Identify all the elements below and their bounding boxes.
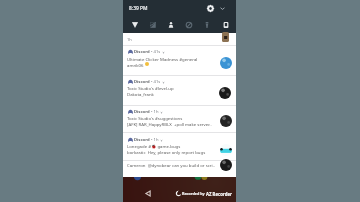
staticText: Discord xyxy=(134,109,150,115)
button[interactable]: Flashlight xyxy=(200,18,213,31)
button[interactable]: Discord xyxy=(123,133,236,160)
staticText: Cameron @dynobear can you build or scri.… xyxy=(127,162,215,168)
staticText: [AFK] RAR_HappyRBLX +poll make server.. xyxy=(127,121,213,127)
staticText: 1h xyxy=(127,37,132,42)
button[interactable]: Settings xyxy=(206,4,215,13)
staticText: Recorded by xyxy=(182,191,205,196)
staticText: • 1h xyxy=(151,109,159,115)
staticText: Discord xyxy=(134,137,150,143)
button[interactable]: Wi-Fi xyxy=(128,18,141,31)
button[interactable]: Expand quick settings xyxy=(218,4,227,13)
button[interactable]: Discord xyxy=(123,75,236,104)
staticText: Lonegade #🐞 game-bugs xyxy=(127,143,213,149)
button[interactable]: Cameron @dynobear can you build or scri.… xyxy=(123,160,236,177)
button[interactable]: 1h xyxy=(123,33,236,45)
staticText: Discord xyxy=(134,79,150,85)
button[interactable]: Cast screen xyxy=(219,18,232,31)
staticText: • 41s xyxy=(151,49,161,55)
staticText: Dakota_frank xyxy=(127,91,213,97)
button[interactable]: Mobile data xyxy=(146,18,159,31)
staticText: 8:39 PM xyxy=(129,5,148,12)
staticText: amrik06 xyxy=(127,62,213,68)
button[interactable]: Discord xyxy=(123,105,236,132)
staticText: borkastic Hey, please only report bugs f… xyxy=(127,149,213,155)
button[interactable]: Discord xyxy=(123,45,236,74)
staticText: • 41s xyxy=(151,79,161,85)
staticText: Toxic Studio's #level-up xyxy=(127,85,213,91)
staticText: Toxic Studio's #suggestions xyxy=(127,115,213,121)
button[interactable]: Account xyxy=(164,18,177,31)
staticText: • 1h xyxy=(151,137,159,143)
staticText: Ultimate Clicker Madness #general xyxy=(127,56,213,62)
button[interactable]: Do not disturb xyxy=(182,18,195,31)
staticText: Discord xyxy=(134,49,150,55)
button[interactable]: Back xyxy=(144,189,153,198)
staticText: AZ Recorder xyxy=(206,191,232,197)
